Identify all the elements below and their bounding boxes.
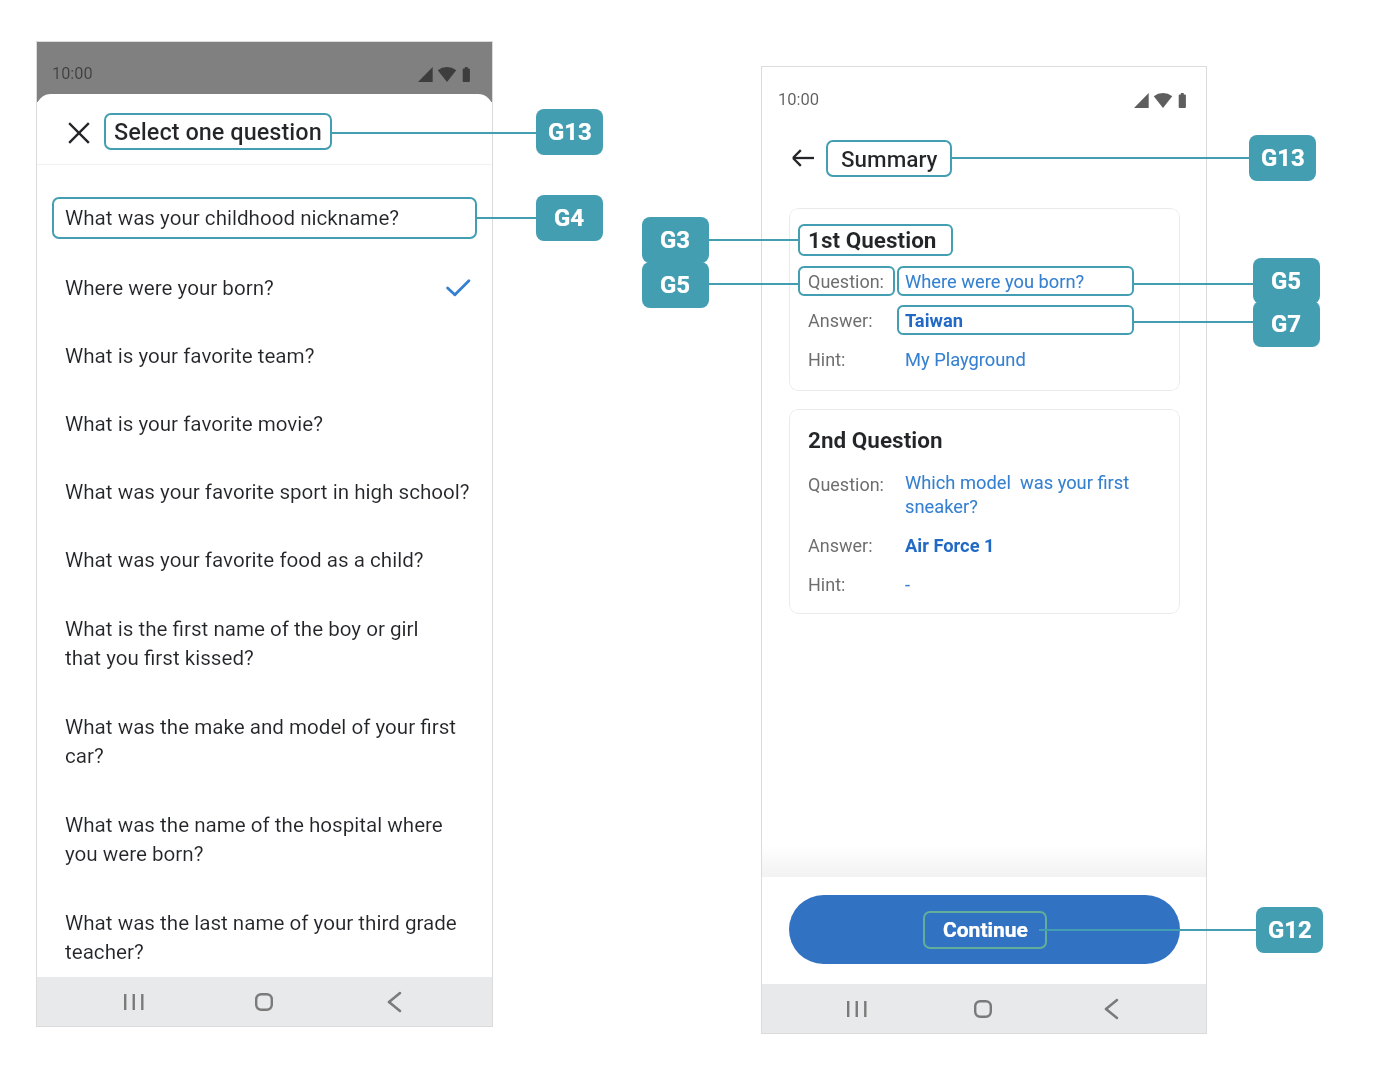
staticText: 10:00 [778, 90, 820, 109]
staticText: Hint: [808, 574, 846, 595]
staticText: Continue [943, 918, 1028, 943]
button[interactable]: Back [372, 980, 416, 1024]
staticText: My Playground [905, 349, 1026, 370]
staticText: What is the first name of the boy or gir… [65, 617, 471, 670]
staticText: G13 [548, 118, 592, 146]
button[interactable]: Home [242, 980, 286, 1024]
button[interactable]: Close [60, 113, 98, 152]
staticText: 10:00 [52, 64, 93, 83]
staticText: Hint: [808, 349, 846, 370]
button[interactable]: Back [785, 140, 821, 176]
staticText: Answer: [808, 310, 873, 331]
staticText: G12 [1268, 916, 1312, 944]
staticText: G3 [660, 226, 691, 254]
staticText: Where were your born? [65, 276, 445, 300]
staticText: G13 [1261, 144, 1305, 172]
staticText: Question: [808, 271, 884, 292]
button[interactable]: What was your favorite sport in high sch… [36, 458, 493, 526]
staticText: Which model was your first sneaker? [905, 472, 1149, 517]
button[interactable]: Continue [789, 895, 1180, 964]
button[interactable]: What was the make and model of your firs… [36, 692, 493, 790]
staticText: What was the last name of your third gra… [65, 911, 471, 964]
button[interactable]: Select one question [104, 113, 332, 150]
staticText: What was your favorite food as a child? [65, 548, 471, 572]
staticText: G5 [1271, 267, 1302, 295]
staticText: What was your favorite sport in high sch… [65, 480, 471, 504]
button[interactable]: What was your childhood nickname? [36, 181, 493, 254]
button[interactable]: What was the name of the hospital where … [36, 790, 493, 888]
button[interactable]: Summary [826, 140, 952, 177]
staticText: What is your favorite team? [65, 344, 471, 368]
staticText: G5 [660, 271, 691, 299]
button[interactable]: What was your favorite food as a child? [36, 526, 493, 594]
button[interactable]: Where were your born? [36, 254, 493, 322]
staticText: Where were you born? [905, 271, 1085, 292]
staticText: - [905, 574, 911, 595]
staticText: Answer: [808, 535, 873, 556]
button[interactable]: What was the last name of your third gra… [36, 888, 493, 986]
staticText: Summary [841, 146, 938, 172]
button[interactable]: What is your favorite team? [36, 322, 493, 390]
button[interactable]: What is your favorite movie? [36, 390, 493, 458]
staticText: What was your childhood nickname? [65, 206, 400, 230]
button[interactable]: Back [1089, 987, 1133, 1031]
staticText: Air Force 1 [905, 535, 995, 556]
staticText: What was the name of the hospital where … [65, 813, 471, 866]
button[interactable]: Recents [111, 980, 155, 1024]
staticText: Select one question [114, 118, 322, 146]
button[interactable]: Home [961, 987, 1005, 1031]
staticText: Question: [808, 474, 884, 495]
staticText: G7 [1271, 310, 1302, 338]
staticText: 1st Question [808, 227, 937, 253]
staticText: What is your favorite movie? [65, 412, 471, 436]
staticText: 2nd Question [808, 427, 943, 453]
staticText: G4 [554, 204, 585, 232]
button[interactable]: Recents [834, 987, 878, 1031]
staticText: Taiwan [905, 310, 963, 331]
button[interactable]: What is the first name of the boy or gir… [36, 594, 493, 692]
staticText: What was the make and model of your firs… [65, 715, 471, 768]
